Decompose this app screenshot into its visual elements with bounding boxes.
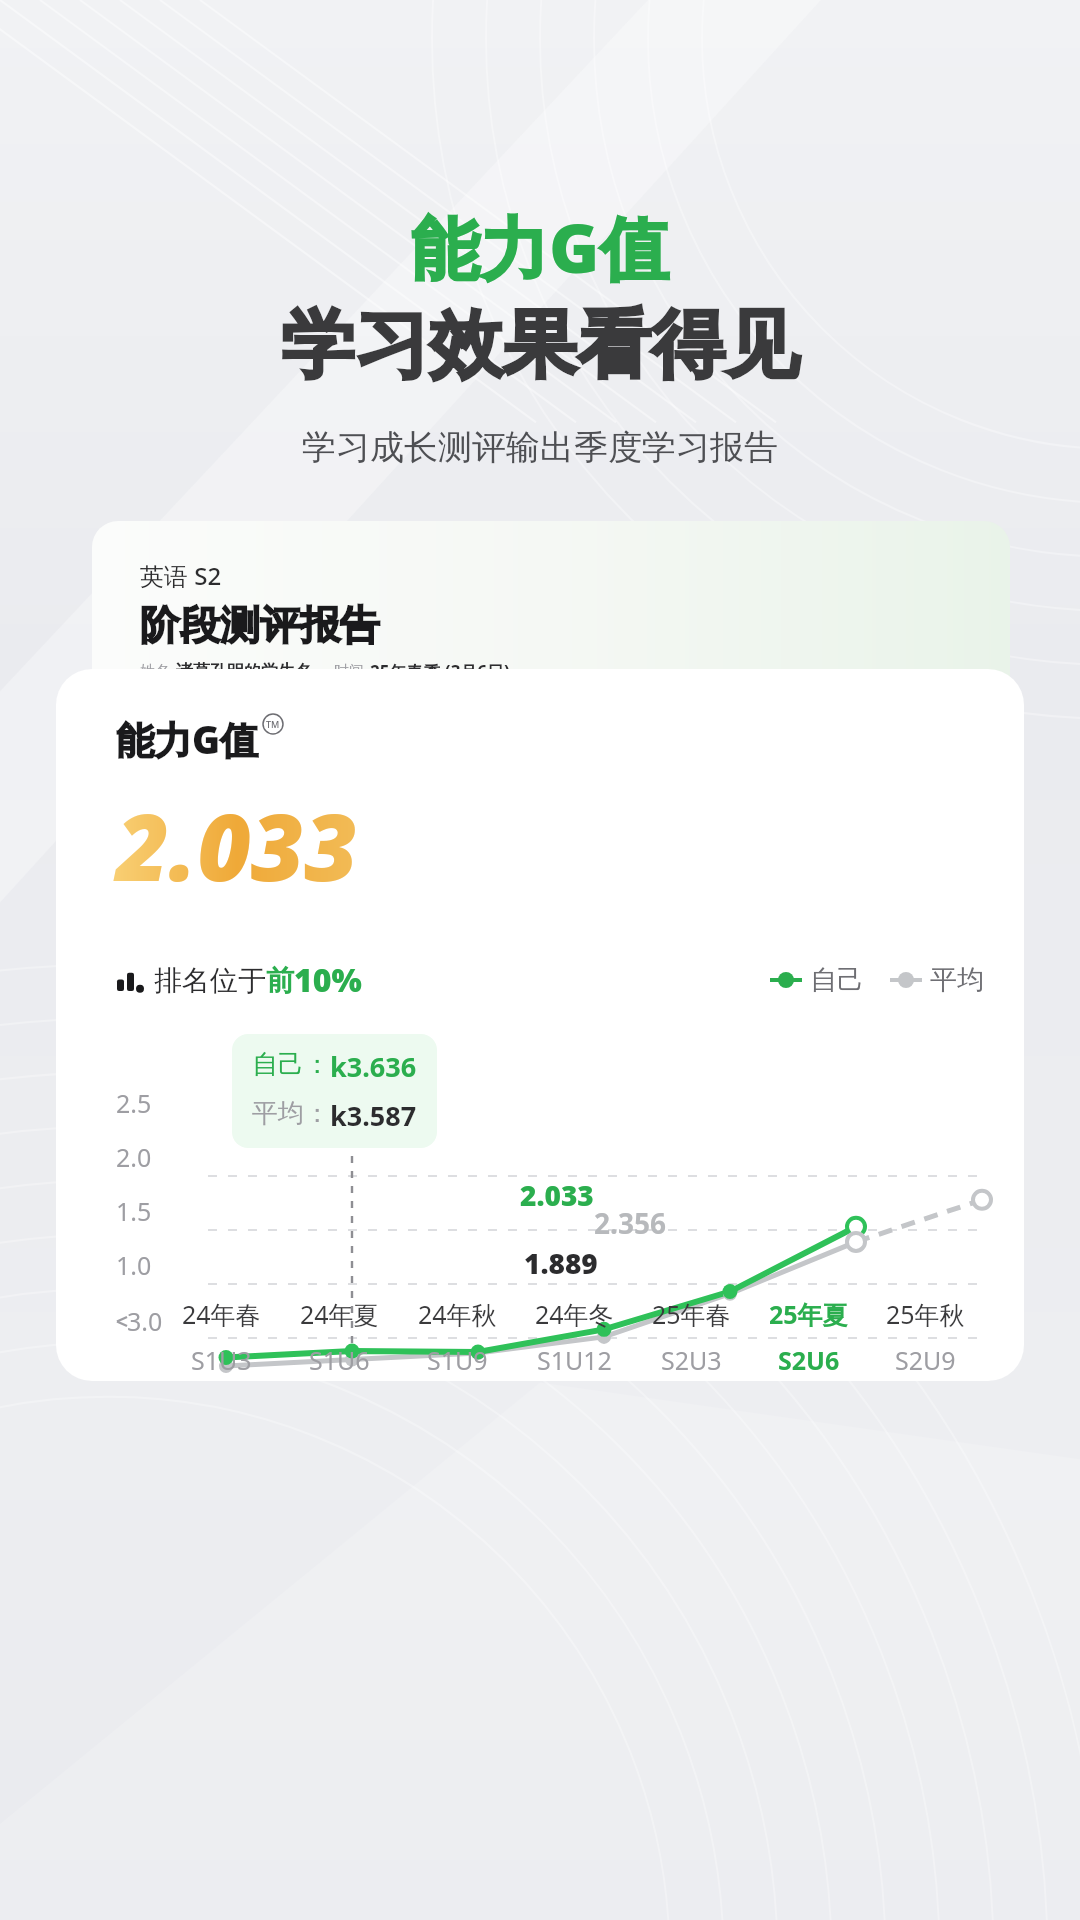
staticText: S2U9 <box>895 1343 956 1377</box>
staticText: 10% <box>294 958 362 1002</box>
staticText: 自己 <box>810 963 864 997</box>
staticText: 24年春 <box>182 1297 261 1331</box>
staticText: 3.0 <box>127 1304 163 1338</box>
staticText: 诸葛孔明的学生名 <box>176 661 312 682</box>
staticText: 24年秋 <box>418 1297 497 1331</box>
button[interactable]: 25年夏 <box>750 1297 867 1377</box>
staticText: 2.033 <box>520 1176 594 1214</box>
staticText: 阶段测评报告 <box>140 600 380 650</box>
staticText: 英语 S2 <box>140 559 222 592</box>
staticText: S2U6 <box>778 1343 840 1377</box>
staticText: 平均 <box>930 963 984 997</box>
button[interactable]: 能力G值 <box>56 669 1024 1381</box>
staticText: 1.5 <box>116 1194 152 1228</box>
staticText: 24年冬 <box>535 1297 614 1331</box>
button[interactable]: 24年秋 <box>398 1297 516 1377</box>
button[interactable]: 25年春 <box>633 1297 750 1377</box>
staticText: 24年夏 <box>300 1297 379 1331</box>
staticText: 2.033 <box>116 783 358 908</box>
staticText: 25年春 <box>652 1297 731 1331</box>
staticText: 排名位于 <box>154 963 266 998</box>
staticText: 25年秋 <box>886 1297 965 1331</box>
staticText: 学习效果看得见 <box>281 299 799 392</box>
staticText: 自己： <box>252 1048 330 1081</box>
staticText: 学习成长测评输出季度学习报告 <box>302 426 778 469</box>
staticText: 1.0 <box>116 1248 152 1282</box>
staticText: k3.587 <box>330 1097 417 1134</box>
button[interactable]: 24年春 <box>162 1297 280 1377</box>
staticText: S1U3 <box>191 1343 252 1377</box>
staticText: S1U9 <box>427 1343 488 1377</box>
staticText: 能力G值 <box>116 713 259 765</box>
staticText: 25年春季 (3月6日) <box>370 660 510 683</box>
staticText: 2.5 <box>116 1086 152 1120</box>
staticText: 时间 <box>334 662 364 681</box>
staticText: k3.636 <box>330 1048 417 1085</box>
staticText: 前 <box>266 963 294 998</box>
staticText: 2.0 <box>116 1140 152 1174</box>
staticText: TM <box>266 718 280 730</box>
staticText: 25年夏 <box>769 1297 848 1331</box>
staticText: 平均： <box>252 1097 330 1130</box>
staticText: 能力G值 <box>411 200 670 293</box>
staticText: 2.356 <box>594 1204 666 1242</box>
staticText: S2U3 <box>661 1343 722 1377</box>
staticText: 姓名 <box>140 662 170 681</box>
button[interactable]: 25年秋 <box>867 1297 984 1377</box>
staticText: S1U6 <box>309 1343 370 1377</box>
staticText: S1U12 <box>537 1343 612 1377</box>
button[interactable]: 24年冬 <box>516 1297 633 1377</box>
button[interactable]: 英语 S2 <box>92 521 1010 821</box>
staticText: 1.889 <box>524 1244 598 1282</box>
button[interactable]: 24年夏 <box>280 1297 398 1377</box>
